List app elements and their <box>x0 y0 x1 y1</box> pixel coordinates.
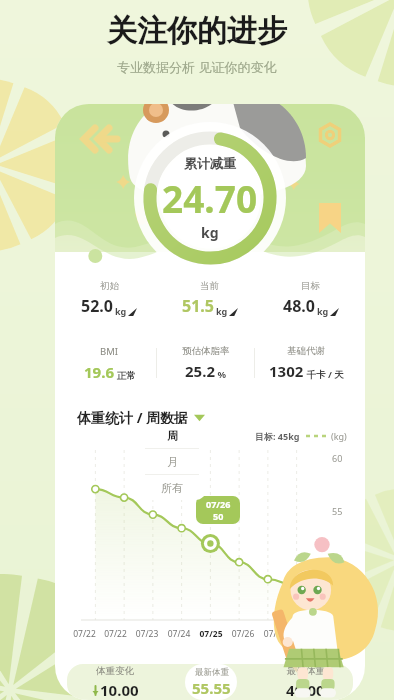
staticText: 专业数据分析 见证你的变化 <box>117 58 277 76</box>
staticText: (kg) <box>331 430 347 442</box>
staticText: 07/27 <box>259 628 291 640</box>
staticText: 所有 <box>161 481 183 495</box>
staticText: 07/23 <box>131 628 163 640</box>
staticText: 累计减重 <box>184 155 236 171</box>
staticText: 07/26 <box>227 628 259 640</box>
staticText: 07/22 <box>69 628 100 640</box>
button[interactable]: 体重统计 / 周数据 <box>77 408 205 427</box>
staticText: 1302 <box>269 361 304 381</box>
staticText: kg <box>216 305 228 317</box>
staticText: 50 <box>213 510 224 522</box>
staticText: 48.0 <box>283 295 315 317</box>
staticText: 07/24 <box>163 628 195 640</box>
staticText: 55.55 <box>192 678 231 698</box>
staticText: 基础代谢 <box>287 345 325 357</box>
staticText: 目标: 45kg <box>255 430 300 442</box>
staticText: 体重统计 / 周数据 <box>77 408 189 427</box>
button[interactable]: 最低体重 <box>258 665 353 700</box>
staticText: kg <box>115 305 127 317</box>
button[interactable]: 当前 <box>159 280 260 317</box>
staticText: 初始 <box>100 280 119 292</box>
staticText: 25.2 <box>185 361 215 381</box>
button[interactable]: 月 <box>137 449 207 474</box>
staticText: 07/25 <box>195 628 227 640</box>
staticText: 预估体脂率 <box>182 345 230 357</box>
staticText: 10.00 <box>100 680 139 700</box>
staticText: kg <box>201 223 219 242</box>
button[interactable]: 基础代谢 <box>255 345 357 381</box>
button[interactable]: 所有 <box>137 475 207 500</box>
staticText: 周 <box>167 429 178 443</box>
staticText: 45 <box>332 610 343 622</box>
staticText: 当前 <box>200 280 219 292</box>
button[interactable]: Back <box>69 122 103 156</box>
staticText: BMI <box>100 345 119 358</box>
staticText: kg <box>317 305 329 317</box>
staticText: 60 <box>332 452 343 464</box>
staticText: 55 <box>332 505 343 517</box>
button[interactable]: 体重变化 <box>67 665 163 700</box>
staticText: 07/26 <box>206 498 231 510</box>
staticText: 51.5 <box>182 295 214 317</box>
staticText: 目标 <box>301 280 320 292</box>
button[interactable]: 周 <box>137 424 207 448</box>
button[interactable]: 目标 <box>260 280 361 317</box>
button[interactable]: 预估体脂率 <box>157 345 254 381</box>
button[interactable]: 最新体重 <box>163 664 258 700</box>
staticText: 月 <box>167 455 178 469</box>
staticText: 最新体重 <box>195 667 229 678</box>
button[interactable]: 初始 <box>59 280 159 317</box>
staticText: 千卡 / 天 <box>304 368 344 381</box>
staticText: 正常 <box>114 369 136 382</box>
button[interactable]: Settings <box>317 122 343 148</box>
staticText: 19.6 <box>84 362 114 382</box>
staticText: 最低体重 <box>287 665 325 677</box>
staticText: 体重变化 <box>96 665 134 677</box>
staticText: % <box>215 368 227 381</box>
staticText: 关注你的进步 <box>107 12 287 50</box>
button[interactable]: BMI <box>63 345 156 382</box>
button[interactable]: Bookmark <box>319 203 341 233</box>
staticText: 24.70 <box>162 173 258 223</box>
staticText: 50 <box>332 557 343 569</box>
staticText: 52.0 <box>81 295 113 317</box>
staticText: 07/22 <box>100 628 131 640</box>
staticText: 40.00 <box>286 680 325 700</box>
